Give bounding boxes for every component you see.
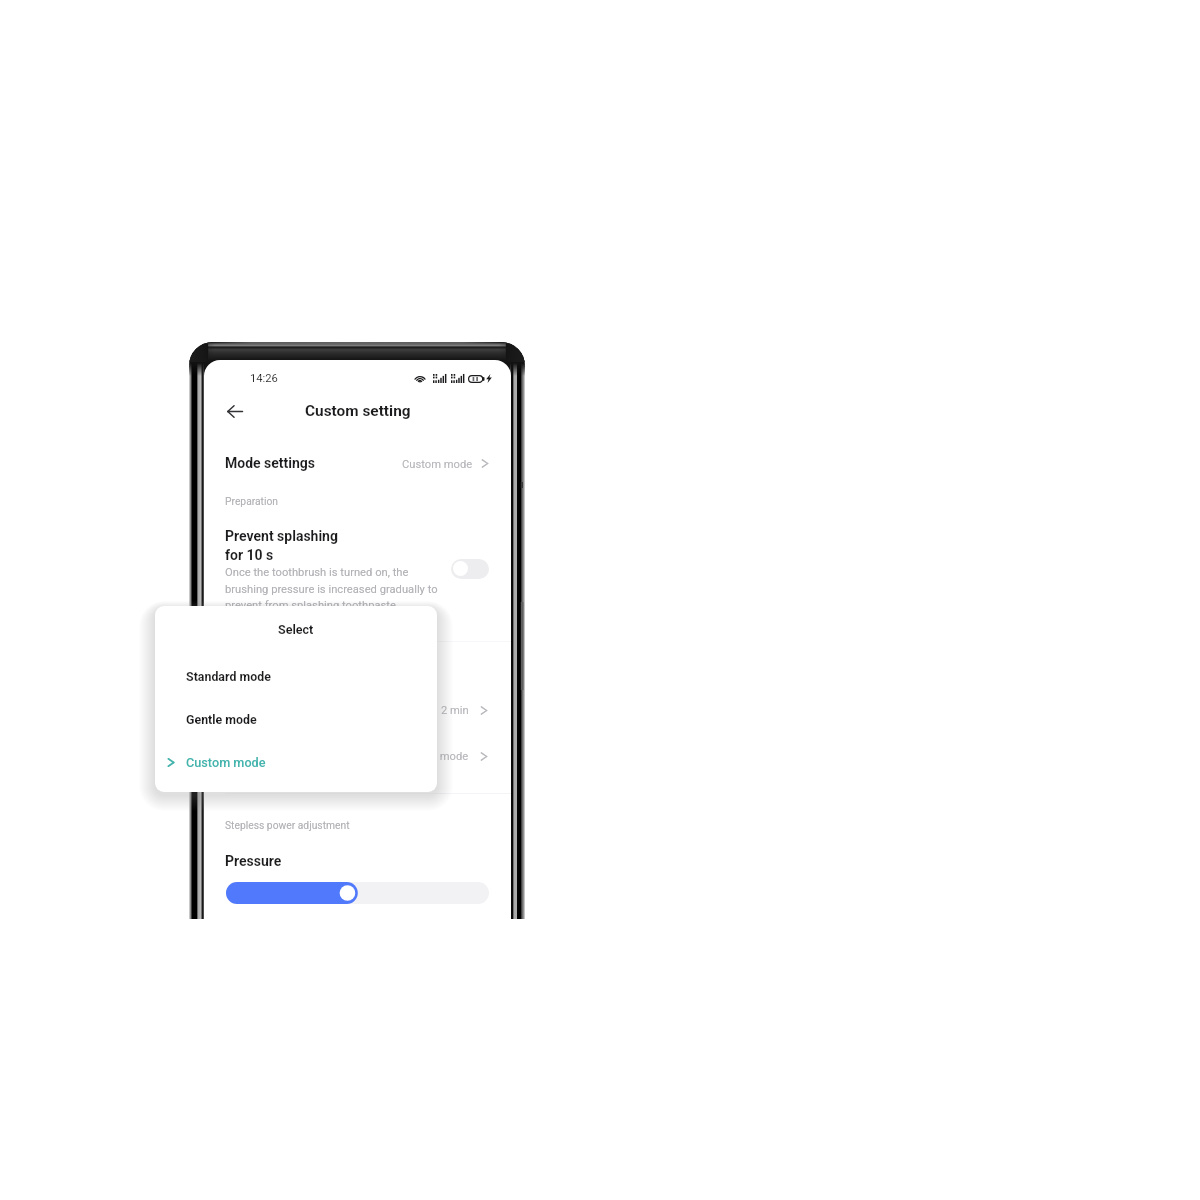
button[interactable]: Custom mode: [155, 741, 437, 783]
staticText: 14:26: [250, 372, 278, 385]
button[interactable]: Back: [209, 393, 245, 429]
button[interactable]: Standard mode: [155, 655, 437, 697]
staticText: Gentle mode: [186, 712, 257, 727]
staticText: Preparation: [225, 495, 279, 507]
staticText: Standard mode: [392, 750, 469, 763]
staticText: Standard mode: [186, 669, 271, 684]
staticText: Stepless power adjustment: [225, 819, 350, 831]
button[interactable]: Gentle mode: [155, 698, 437, 740]
staticText: 2 min: [441, 704, 469, 717]
button[interactable]: Pressure slider: [226, 882, 489, 904]
staticText: Prevent splashing: [225, 528, 338, 544]
staticText: for 10 s: [225, 547, 274, 563]
button[interactable]: Prevent splashing toggle: [451, 559, 489, 579]
button[interactable]: 2 min: [204, 695, 511, 725]
staticText: Select: [278, 622, 314, 637]
staticText: Mode settings: [225, 455, 316, 471]
staticText: Pressure: [225, 853, 282, 869]
staticText: Custom setting: [305, 402, 411, 420]
staticText: Custom mode: [402, 458, 473, 471]
staticText: Custom mode: [186, 755, 266, 770]
button[interactable]: Mode settings: [204, 447, 511, 480]
staticText: Once the toothbrush is turned on, the br…: [225, 566, 441, 612]
button[interactable]: Standard mode: [204, 741, 511, 771]
